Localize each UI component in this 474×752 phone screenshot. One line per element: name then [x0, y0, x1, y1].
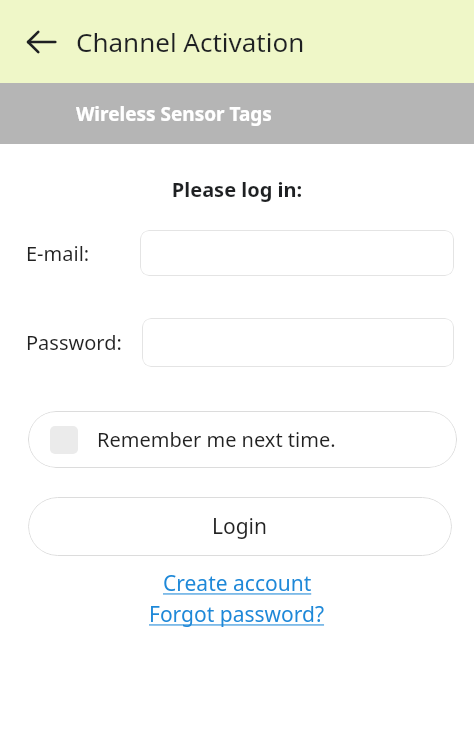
- button[interactable]: [142, 318, 454, 367]
- staticText: Create account: [163, 569, 312, 598]
- button[interactable]: [140, 230, 454, 276]
- button[interactable]: Forgot password?: [149, 600, 325, 629]
- button[interactable]: Back: [24, 25, 58, 59]
- staticText: Password:: [26, 329, 122, 356]
- button[interactable]: Remember me next time.: [28, 411, 457, 468]
- staticText: Login: [212, 512, 268, 541]
- staticText: Remember me next time.: [97, 426, 336, 453]
- button[interactable]: Create account: [163, 569, 312, 598]
- staticText: E-mail:: [26, 240, 90, 267]
- staticText: Please log in:: [0, 176, 474, 203]
- staticText: Wireless Sensor Tags: [76, 101, 272, 127]
- button[interactable]: Login: [28, 497, 452, 556]
- staticText: Forgot password?: [149, 600, 325, 629]
- staticText: Channel Activation: [76, 24, 305, 59]
